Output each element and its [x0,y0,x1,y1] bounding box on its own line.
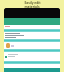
button[interactable] [4,42,60,49]
staticText: Easily edit [24,1,41,5]
staticText: materials [24,5,40,9]
button[interactable] [4,52,60,61]
button[interactable] [4,32,60,39]
